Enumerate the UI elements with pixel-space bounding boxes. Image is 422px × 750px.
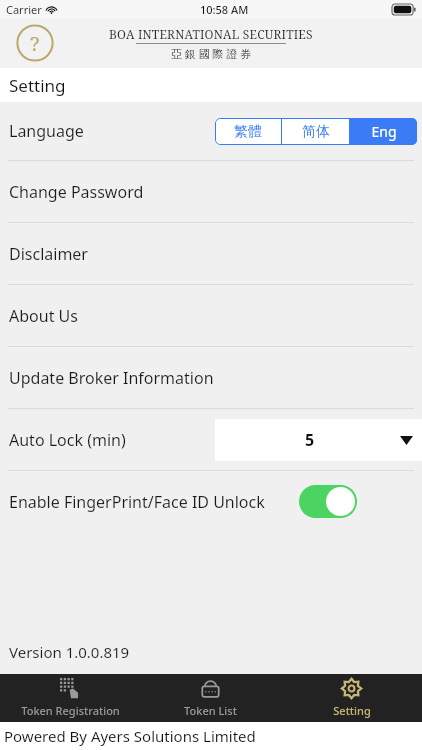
button[interactable]: 繁體 xyxy=(215,118,281,145)
staticText: Eng xyxy=(371,122,397,141)
staticText: About Us xyxy=(9,305,78,327)
staticText: Auto Lock (min) xyxy=(9,429,126,451)
staticText: Token Registration xyxy=(21,703,120,718)
button[interactable]: 简体 xyxy=(282,118,349,145)
staticText: ? xyxy=(30,30,40,57)
button[interactable]: Setting xyxy=(281,674,422,722)
button[interactable]: Token List xyxy=(140,674,281,722)
staticText: Enable FingerPrint/Face ID Unlock xyxy=(9,491,265,513)
button[interactable]: Update Broker Information xyxy=(0,347,422,408)
staticText: 繁體 xyxy=(234,123,262,141)
staticText: 简体 xyxy=(302,123,330,141)
button[interactable]: Disclaimer xyxy=(0,223,422,284)
staticText: Setting xyxy=(9,74,66,97)
staticText: 10:58 AM xyxy=(200,2,249,17)
staticText: Powered By Ayers Solutions Limited xyxy=(4,726,256,746)
button[interactable]: Eng xyxy=(350,118,417,145)
staticText: Version 1.0.0.819 xyxy=(9,642,130,662)
staticText: Update Broker Information xyxy=(9,367,214,389)
staticText: Token List xyxy=(184,703,237,718)
staticText: 亞 銀 國 際 證 券 xyxy=(171,46,252,61)
staticText: Carrier xyxy=(6,2,42,17)
button[interactable]: Help xyxy=(16,24,54,62)
button[interactable]: 5 xyxy=(215,419,422,461)
button[interactable]: Enable FingerPrint/Face ID Unlock xyxy=(299,485,357,518)
button[interactable]: Token Registration xyxy=(0,674,140,722)
staticText: Change Password xyxy=(9,181,144,203)
staticText: BOA INTERNATIONAL SECURITIES xyxy=(109,26,313,42)
staticText: Language xyxy=(9,120,84,142)
button[interactable]: About Us xyxy=(0,285,422,346)
staticText: Disclaimer xyxy=(9,243,88,265)
button[interactable]: Change Password xyxy=(0,161,422,222)
staticText: Setting xyxy=(333,703,371,718)
staticText: 5 xyxy=(305,429,315,451)
